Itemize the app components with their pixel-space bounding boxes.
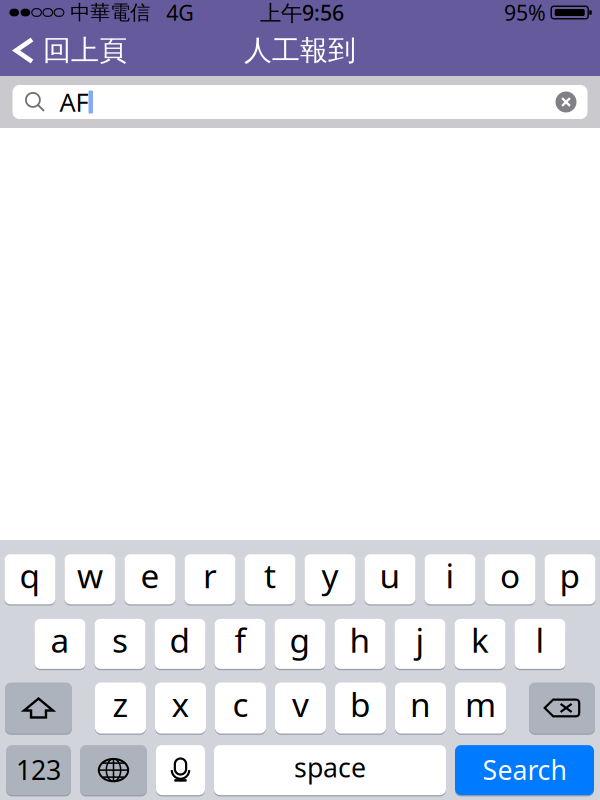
staticText: 回上頁	[43, 33, 127, 68]
staticText: c	[232, 682, 248, 726]
staticText: AF	[59, 85, 88, 119]
button[interactable]: Next keyboard	[80, 744, 147, 796]
staticText: 人工報到	[244, 33, 356, 68]
staticText: w	[77, 553, 103, 597]
button[interactable]: v	[275, 681, 326, 735]
staticText: Search	[482, 752, 566, 787]
button[interactable]: Search	[455, 744, 594, 796]
button[interactable]: e	[124, 553, 175, 606]
button[interactable]: Clear text	[555, 91, 587, 112]
button[interactable]: t	[244, 553, 295, 606]
staticText: 中華電信	[70, 0, 150, 25]
staticText: 上午9:56	[260, 0, 344, 27]
staticText: g	[289, 618, 310, 662]
button[interactable]: space	[214, 744, 446, 796]
button[interactable]: w	[64, 553, 115, 606]
button[interactable]: f	[214, 618, 265, 670]
button[interactable]: m	[455, 681, 506, 735]
staticText: p	[559, 553, 580, 597]
staticText: space	[294, 749, 366, 785]
staticText: r	[203, 553, 217, 597]
staticText: z	[112, 682, 128, 726]
staticText: 123	[16, 752, 61, 787]
staticText: x	[171, 682, 189, 726]
staticText: k	[471, 618, 489, 662]
staticText: u	[379, 553, 400, 597]
staticText: a	[50, 618, 69, 662]
button[interactable]: o	[484, 553, 535, 606]
staticText: v	[292, 682, 309, 726]
staticText: d	[169, 618, 190, 662]
button[interactable]: d	[154, 618, 205, 670]
button[interactable]: s	[94, 618, 145, 670]
button[interactable]: i	[424, 553, 475, 606]
button[interactable]: c	[215, 681, 266, 735]
staticText: f	[234, 618, 245, 662]
staticText: j	[415, 618, 424, 662]
button[interactable]: y	[304, 553, 355, 606]
staticText: i	[445, 553, 454, 597]
staticText: q	[19, 553, 40, 597]
button[interactable]: q	[4, 553, 55, 606]
button[interactable]: r	[184, 553, 235, 606]
button[interactable]: x	[155, 681, 206, 735]
staticText: m	[465, 682, 496, 726]
button[interactable]: u	[364, 553, 415, 606]
staticText: y	[321, 553, 338, 597]
staticText: 4G	[166, 0, 194, 27]
button[interactable]: Delete	[529, 681, 595, 735]
button[interactable]: a	[34, 618, 85, 670]
staticText: h	[349, 618, 370, 662]
staticText: o	[500, 553, 520, 597]
staticText: t	[264, 553, 276, 597]
button[interactable]: Shift	[5, 681, 72, 735]
staticText: e	[140, 553, 159, 597]
button[interactable]: p	[544, 553, 595, 606]
button[interactable]: k	[454, 618, 505, 670]
staticText: 95%	[504, 0, 546, 27]
button[interactable]: 回上頁	[0, 25, 139, 76]
staticText: l	[535, 618, 544, 662]
staticText: n	[410, 682, 431, 726]
button[interactable]: z	[95, 681, 146, 735]
staticText: s	[112, 618, 128, 662]
button[interactable]: b	[335, 681, 386, 735]
button[interactable]: Dictation	[156, 744, 205, 796]
button[interactable]: g	[274, 618, 325, 670]
button[interactable]: h	[334, 618, 385, 670]
button[interactable]: l	[514, 618, 565, 670]
button[interactable]: j	[394, 618, 445, 670]
button[interactable]: n	[395, 681, 446, 735]
button[interactable]: 123	[6, 744, 71, 796]
staticText: b	[350, 682, 371, 726]
